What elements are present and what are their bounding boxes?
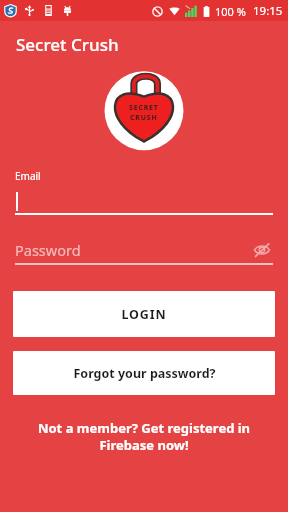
button[interactable]: Not a member? Get registered in Firebase… [18,419,270,454]
button[interactable]: Email [15,169,273,215]
staticText: Forgot your password? [73,365,216,382]
staticText: Not a member? Get registered in Firebase… [18,419,270,454]
staticText: SECRET [129,103,159,113]
button[interactable]: Password [15,237,273,265]
staticText: Email [15,169,41,183]
staticText: Password [15,240,81,260]
button[interactable]: Forgot your password? [13,351,275,395]
staticText: CRUSH [130,113,158,123]
staticText: 19:15 [253,3,283,19]
staticText: 100 % [215,4,246,19]
button[interactable]: LOGIN [13,291,275,337]
staticText: LOGIN [121,306,167,323]
button[interactable]: Toggle password visibility [251,239,273,261]
staticText: Secret Crush [16,33,119,56]
